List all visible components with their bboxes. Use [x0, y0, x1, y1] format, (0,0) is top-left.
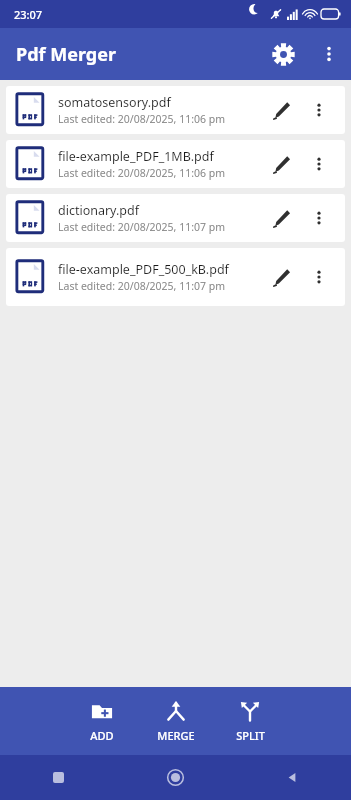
- staticText: Last edited: 20/08/2025, 11:06 pm: [58, 166, 225, 180]
- button[interactable]: Settings: [259, 30, 307, 78]
- button[interactable]: somatosensory.pdf: [6, 86, 345, 134]
- button[interactable]: More options: [301, 146, 337, 182]
- button[interactable]: More options: [307, 32, 351, 76]
- button[interactable]: file-example_PDF_500_kB.pdf: [6, 248, 345, 306]
- button[interactable]: file-example_PDF_1MB.pdf: [6, 140, 345, 188]
- staticText: file-example_PDF_1MB.pdf: [58, 148, 214, 165]
- staticText: file-example_PDF_500_kB.pdf: [58, 261, 229, 278]
- staticText: Last edited: 20/08/2025, 11:07 pm: [58, 220, 225, 234]
- button[interactable]: More options: [301, 92, 337, 128]
- button[interactable]: More options: [301, 259, 337, 295]
- button[interactable]: Rename: [261, 90, 301, 130]
- staticText: SPLIT: [236, 728, 265, 743]
- button[interactable]: SPLIT: [216, 687, 284, 755]
- button[interactable]: dictionary.pdf: [6, 194, 345, 242]
- staticText: MERGE: [157, 728, 195, 743]
- button[interactable]: Rename: [261, 144, 301, 184]
- staticText: ADD: [90, 728, 114, 743]
- button[interactable]: MERGE: [142, 687, 210, 755]
- button[interactable]: More options: [301, 200, 337, 236]
- button[interactable]: Rename: [261, 257, 301, 297]
- button[interactable]: Recents: [53, 772, 64, 783]
- staticText: dictionary.pdf: [58, 202, 140, 219]
- staticText: 23:07: [14, 7, 43, 22]
- button[interactable]: Back: [286, 771, 299, 784]
- staticText: Last edited: 20/08/2025, 11:06 pm: [58, 112, 225, 126]
- button[interactable]: Rename: [261, 198, 301, 238]
- staticText: Pdf Merger: [16, 42, 116, 67]
- staticText: somatosensory.pdf: [58, 94, 171, 111]
- button[interactable]: Home: [167, 769, 184, 786]
- button[interactable]: ADD: [68, 687, 136, 755]
- staticText: Last edited: 20/08/2025, 11:07 pm: [58, 279, 225, 293]
